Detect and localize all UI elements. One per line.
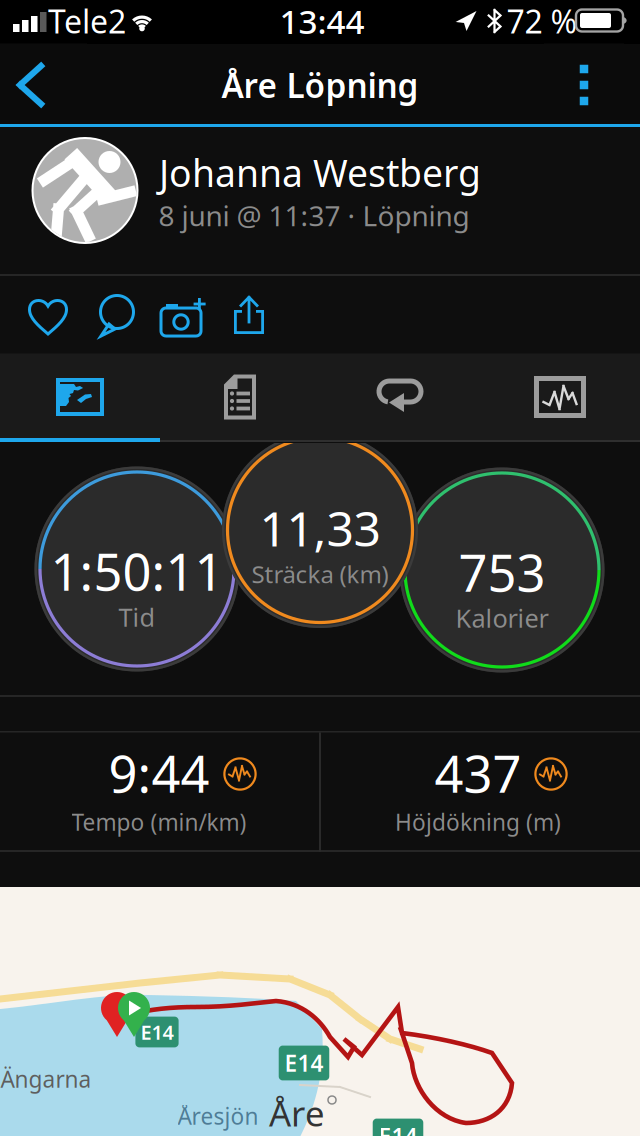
button[interactable]: Details (160, 353, 320, 440)
staticText: Tempo (min/km) (71, 807, 246, 837)
button[interactable]: Map (0, 353, 160, 440)
staticText: 1:50:11 (50, 537, 223, 605)
button[interactable]: Share (215, 277, 283, 355)
staticText: E14 (378, 1121, 417, 1136)
staticText: Sträcka (km) (251, 558, 388, 590)
staticText: 72 % (506, 0, 577, 42)
staticText: 9:44 (108, 739, 209, 807)
staticText: 13:44 (279, 0, 364, 43)
button[interactable]: Add photo (149, 277, 217, 355)
staticText: 11,33 (259, 496, 380, 560)
staticText: Åresjön (177, 1101, 258, 1131)
staticText: Höjdökning (m) (395, 807, 561, 837)
button[interactable]: Back (0, 43, 87, 126)
staticText: 8 juni @ 11:37 · Löpning (158, 197, 469, 234)
button[interactable]: Charts (480, 353, 640, 440)
staticText: Åre Löpning (221, 63, 418, 107)
staticText: Åre (269, 1090, 325, 1136)
button[interactable]: More options (544, 43, 624, 126)
staticText: 437 (434, 739, 521, 807)
staticText: 753 (458, 538, 545, 606)
button[interactable]: Comment (83, 277, 151, 355)
staticText: E14 (284, 1048, 323, 1078)
staticText: E14 (140, 1019, 173, 1045)
staticText: Kalorier (455, 601, 548, 635)
button[interactable]: Laps (320, 353, 480, 440)
button[interactable]: Like (14, 277, 82, 355)
staticText: Johanna Westberg (159, 148, 481, 197)
staticText: Ängarna (0, 1064, 91, 1094)
staticText: Tele2 (48, 0, 126, 42)
staticText: Tid (118, 600, 155, 634)
